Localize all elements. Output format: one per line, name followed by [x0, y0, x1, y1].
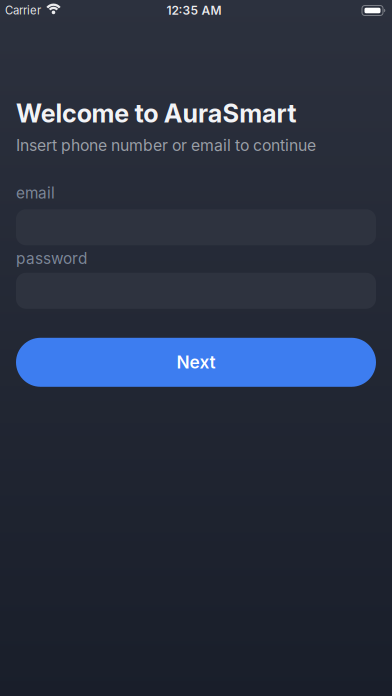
staticText: Welcome to AuraSmart [16, 98, 296, 129]
button[interactable]: Next [16, 338, 376, 387]
staticText: password [16, 249, 87, 268]
staticText: Carrier [5, 4, 41, 17]
staticText: email [16, 184, 55, 202]
staticText: Insert phone number or email to continue [16, 136, 316, 155]
staticText: Next [176, 352, 215, 373]
staticText: 12:35 AM [166, 3, 221, 18]
